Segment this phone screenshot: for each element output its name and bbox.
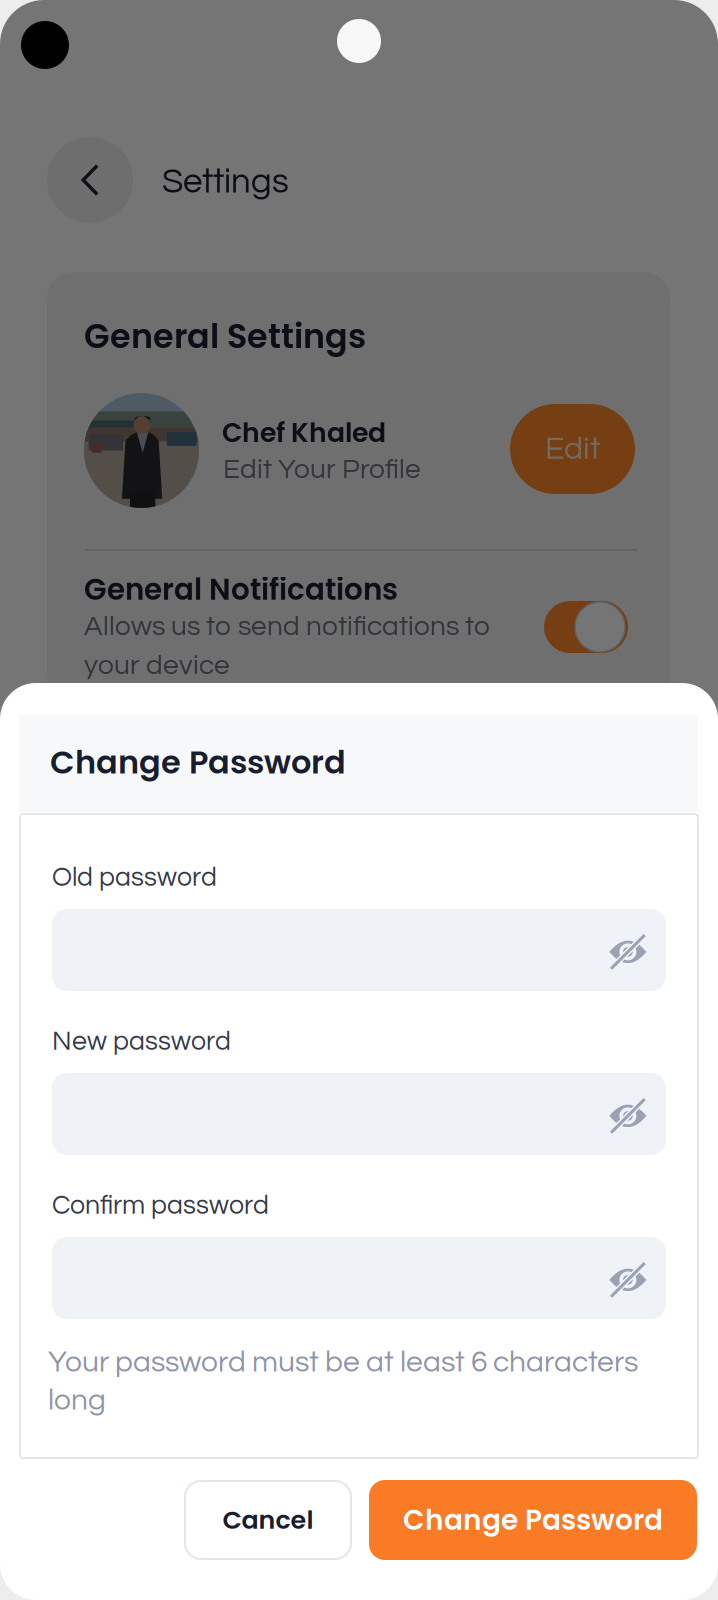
staticText: long <box>48 1385 106 1416</box>
button[interactable]: Cancel <box>185 1481 351 1559</box>
staticText: Allows us to send notifications to <box>84 612 490 641</box>
staticText: Change Password <box>403 1500 663 1540</box>
staticText: Edit Your Profile <box>223 455 421 484</box>
button[interactable]: Change Password <box>369 1480 697 1560</box>
button[interactable]: Show Confirm password <box>52 1237 666 1319</box>
button[interactable]: Show Old password <box>52 909 666 991</box>
staticText: General Notifications <box>84 569 398 610</box>
staticText: Chef Khaled <box>222 414 386 451</box>
staticText: Your password must be at least 6 charact… <box>48 1347 638 1378</box>
staticText: Settings <box>162 164 289 200</box>
staticText: Cancel <box>222 1502 313 1538</box>
staticText: Confirm password <box>52 1192 269 1219</box>
button[interactable]: Back <box>47 137 133 223</box>
staticText: New password <box>52 1028 231 1055</box>
staticText: General Settings <box>84 313 366 360</box>
staticText: Edit <box>545 432 600 465</box>
button[interactable]: Show New password <box>52 1073 666 1155</box>
button[interactable]: Edit <box>510 404 635 494</box>
staticText: Old password <box>52 864 217 891</box>
staticText: your device <box>84 651 230 680</box>
staticText: Change Password <box>50 740 346 785</box>
